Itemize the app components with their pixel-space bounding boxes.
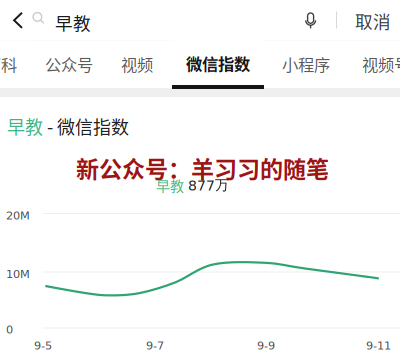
button[interactable]: 百科 xyxy=(0,40,32,87)
button[interactable]: 微信指数 xyxy=(170,40,265,88)
staticText: 877万 xyxy=(184,176,229,194)
staticText: 10M xyxy=(6,267,30,281)
button[interactable]: 小程序 xyxy=(281,40,331,87)
staticText: 公众号 xyxy=(45,52,93,76)
staticText: 视频 xyxy=(121,52,153,76)
button[interactable]: 公众号 xyxy=(44,40,94,87)
button[interactable]: Voice search xyxy=(294,0,328,40)
staticText: 百科 xyxy=(0,52,17,76)
button[interactable]: Back xyxy=(3,0,33,40)
staticText: 视频号 xyxy=(362,52,400,76)
staticText: 9-11 xyxy=(366,339,391,350)
staticText: 0 xyxy=(6,323,13,336)
staticText: - 微信指数 xyxy=(43,113,129,139)
staticText: 9-7 xyxy=(146,339,164,350)
button[interactable]: 取消 xyxy=(348,0,398,40)
staticText: 取消 xyxy=(355,8,391,33)
staticText: 早教 xyxy=(156,175,184,195)
staticText: 20M xyxy=(6,209,30,222)
staticText: 早教 xyxy=(7,113,43,139)
staticText: 9-9 xyxy=(257,339,275,350)
staticText: 小程序 xyxy=(282,52,330,76)
staticText: 新公众号：羊习习的随笔 xyxy=(76,151,329,184)
staticText: 9-5 xyxy=(34,339,52,350)
button[interactable]: 视频 xyxy=(120,40,154,87)
button[interactable]: 视频号 xyxy=(361,40,400,87)
staticText: 微信指数 xyxy=(186,51,250,75)
staticText: 早教 xyxy=(55,9,91,35)
